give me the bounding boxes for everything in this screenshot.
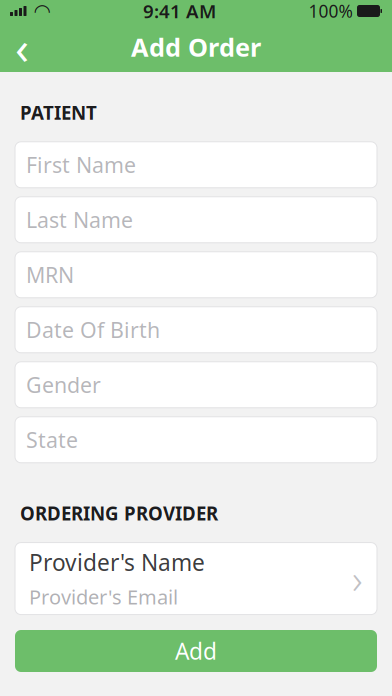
button[interactable]: Provider's Name: [15, 543, 377, 615]
staticText: ‹: [15, 17, 29, 77]
button[interactable]: Gender: [15, 362, 377, 408]
staticText: Gender: [26, 371, 101, 399]
staticText: ORDERING PROVIDER: [20, 501, 218, 526]
staticText: 9:41 AM: [143, 0, 216, 23]
staticText: Add Order: [131, 30, 261, 64]
staticText: State: [26, 426, 78, 454]
button[interactable]: Add: [15, 630, 377, 672]
button[interactable]: First Name: [15, 142, 377, 188]
staticText: Date Of Birth: [26, 316, 160, 344]
staticText: MRN: [26, 261, 74, 289]
staticText: PATIENT: [20, 100, 97, 125]
staticText: First Name: [26, 151, 136, 179]
staticText: Provider's Name: [29, 547, 205, 577]
staticText: Add: [175, 636, 217, 666]
staticText: 100%: [308, 0, 352, 22]
staticText: ◠: [33, 0, 50, 22]
staticText: Provider's Email: [29, 583, 178, 610]
button[interactable]: MRN: [15, 252, 377, 298]
staticText: ›: [352, 552, 363, 605]
staticText: Last Name: [26, 206, 133, 234]
button[interactable]: Back: [0, 22, 44, 72]
button[interactable]: Last Name: [15, 197, 377, 243]
button[interactable]: State: [15, 417, 377, 463]
button[interactable]: Date Of Birth: [15, 307, 377, 353]
